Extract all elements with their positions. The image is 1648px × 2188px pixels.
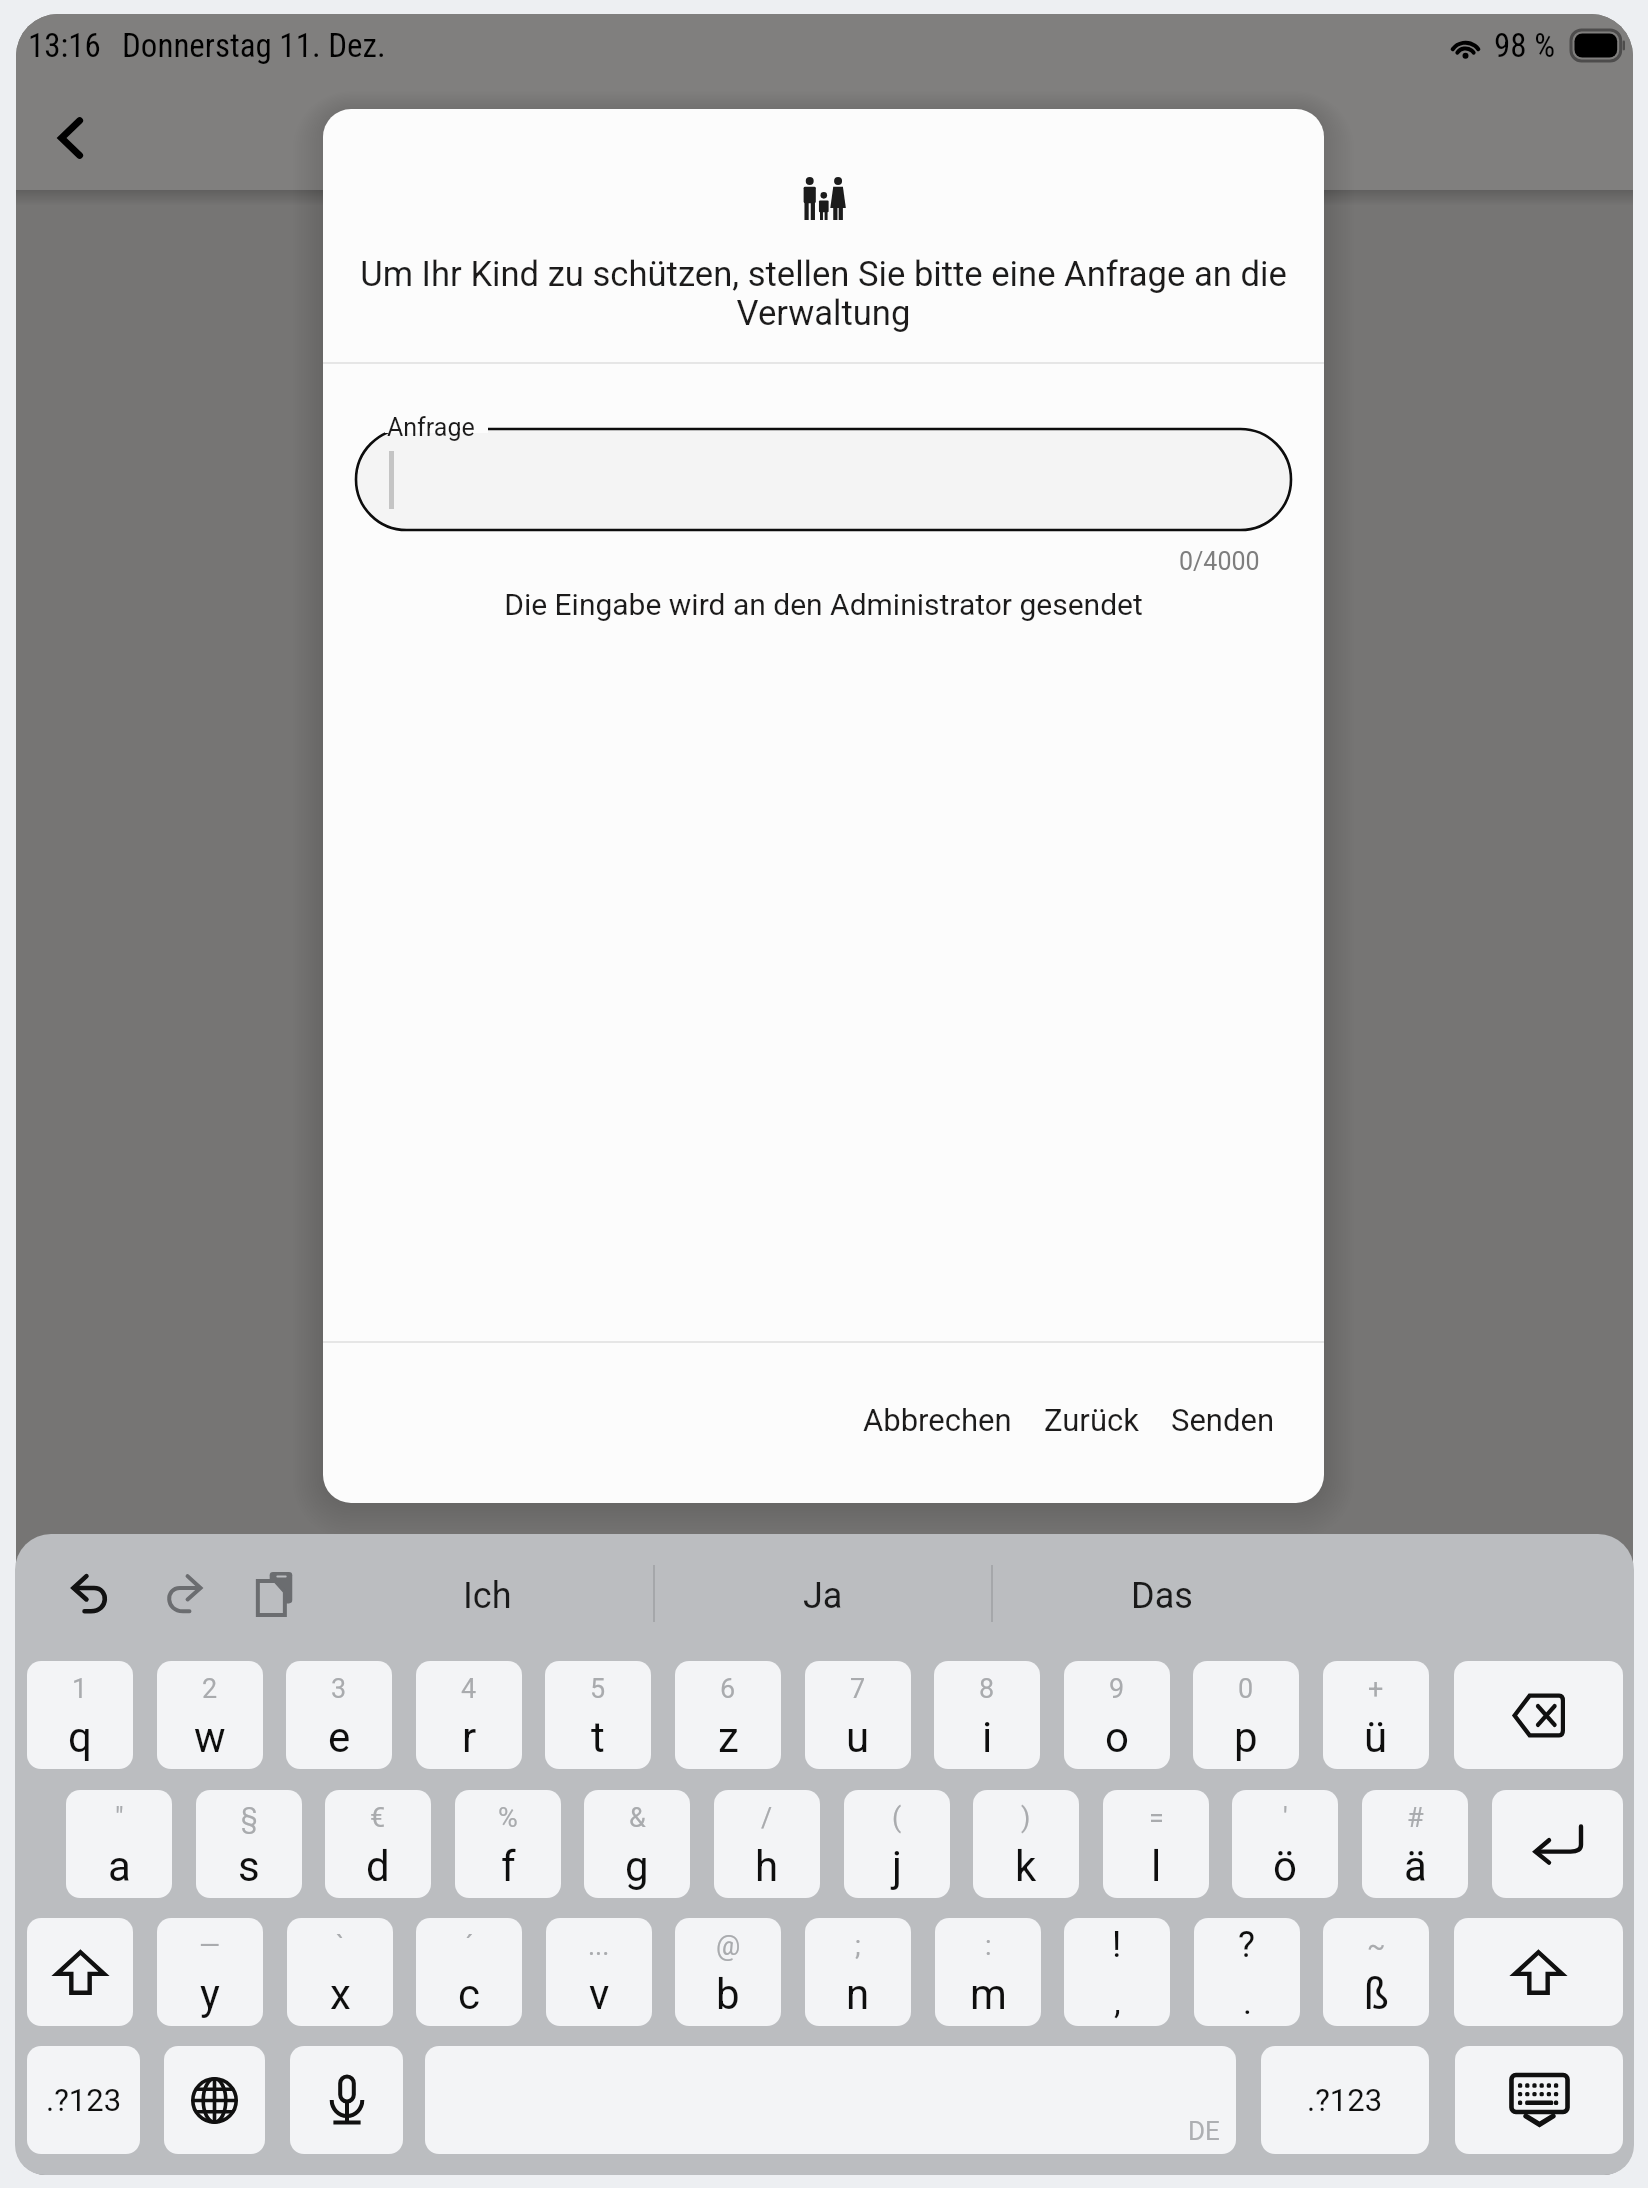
button[interactable]: &	[584, 1790, 690, 1898]
staticText: Die Eingabe wird an den Administrator ge…	[323, 587, 1324, 622]
staticText: e	[328, 1713, 351, 1762]
button[interactable]: 2	[157, 1661, 263, 1769]
staticText: %	[498, 1802, 518, 1834]
staticText: =	[1149, 1802, 1164, 1834]
button[interactable]: Switch language	[164, 2046, 265, 2154]
button[interactable]: Clipboard	[242, 1561, 306, 1625]
staticText: —	[199, 1930, 221, 1962]
button[interactable]: #	[1362, 1790, 1468, 1898]
staticText: h	[755, 1842, 779, 1891]
staticText: Abbrechen	[863, 1402, 1012, 1438]
staticText: b	[716, 1970, 740, 2019]
button[interactable]: 1	[27, 1661, 133, 1769]
staticText: u	[846, 1713, 870, 1762]
button[interactable]: )	[973, 1790, 1079, 1898]
button[interactable]: 4	[416, 1661, 522, 1769]
staticText: @	[716, 1930, 741, 1962]
button[interactable]: —	[157, 1918, 263, 2026]
staticText: i	[982, 1713, 993, 1762]
staticText: j	[892, 1842, 903, 1891]
staticText: +	[1368, 1673, 1384, 1705]
button[interactable]: ´	[416, 1918, 522, 2026]
staticText: #	[1407, 1802, 1424, 1834]
staticText: k	[1015, 1842, 1037, 1891]
button[interactable]: .?123	[27, 2046, 140, 2154]
staticText: &	[629, 1802, 646, 1834]
staticText: §	[241, 1802, 258, 1834]
button[interactable]: @	[675, 1918, 781, 2026]
button[interactable]: 0	[1193, 1661, 1299, 1769]
button[interactable]: €	[325, 1790, 431, 1898]
button[interactable]: Voice input	[290, 2046, 403, 2154]
staticText: Donnerstag 11. Dez.	[122, 26, 386, 65]
staticText: 4	[461, 1673, 477, 1705]
staticText: ?	[1238, 1924, 1256, 1966]
button[interactable]: Enter	[1492, 1790, 1623, 1898]
button[interactable]: /	[714, 1790, 820, 1898]
button[interactable]: Shift	[27, 1918, 133, 2026]
staticText: w	[194, 1713, 226, 1762]
button[interactable]: Space	[425, 2046, 1236, 2154]
button[interactable]: 8	[934, 1661, 1040, 1769]
button[interactable]: Backspace	[1454, 1661, 1623, 1769]
button[interactable]: Shift	[1454, 1918, 1623, 2026]
button[interactable]: '	[1232, 1790, 1338, 1898]
staticText: ,	[1114, 1982, 1121, 2022]
staticText: 98 %	[1494, 26, 1556, 65]
button[interactable]: (	[844, 1790, 950, 1898]
button[interactable]: Back	[26, 94, 114, 182]
button[interactable]: "	[66, 1790, 172, 1898]
staticText: .?123	[46, 2082, 122, 2118]
button[interactable]: `	[287, 1918, 393, 2026]
staticText: s	[238, 1842, 260, 1891]
staticText: Senden	[1171, 1402, 1275, 1438]
button[interactable]: Ja	[655, 1534, 991, 1650]
staticText: .?123	[1307, 2082, 1383, 2118]
staticText: 3	[331, 1673, 347, 1705]
button[interactable]: §	[196, 1790, 302, 1898]
staticText: Ich	[463, 1575, 512, 1617]
button[interactable]: 9	[1064, 1661, 1170, 1769]
button[interactable]: .?123	[1261, 2046, 1429, 2154]
button[interactable]: 5	[545, 1661, 651, 1769]
button[interactable]: ;	[805, 1918, 911, 2026]
button[interactable]: ~	[1323, 1918, 1429, 2026]
staticText: a	[108, 1842, 131, 1891]
staticText: n	[846, 1970, 870, 2019]
staticText: 8	[979, 1673, 995, 1705]
button[interactable]: %	[455, 1790, 561, 1898]
button[interactable]: Zurück	[1028, 1388, 1155, 1452]
button[interactable]: 6	[675, 1661, 781, 1769]
button[interactable]: Hide keyboard	[1455, 2046, 1623, 2154]
button[interactable]: Abbrechen	[847, 1388, 1028, 1452]
button[interactable]: Undo	[59, 1561, 123, 1625]
staticText: d	[366, 1842, 390, 1891]
staticText: 0/4000	[1179, 547, 1260, 576]
button[interactable]: +	[1323, 1661, 1429, 1769]
button[interactable]: !	[1064, 1918, 1170, 2026]
staticText: y	[200, 1970, 220, 2019]
button[interactable]	[356, 429, 1291, 530]
staticText: ;	[855, 1930, 861, 1962]
button[interactable]: Ich	[321, 1534, 653, 1650]
staticText: 1	[72, 1673, 88, 1705]
staticText: Anfrage	[387, 413, 475, 442]
staticText: Das	[1131, 1575, 1193, 1617]
staticText: )	[1021, 1802, 1031, 1834]
staticText: Ja	[803, 1575, 843, 1617]
button[interactable]: 3	[286, 1661, 392, 1769]
button[interactable]: =	[1103, 1790, 1209, 1898]
button[interactable]: 7	[805, 1661, 911, 1769]
staticText: 13:16	[28, 26, 101, 65]
button[interactable]: Das	[993, 1534, 1331, 1650]
button[interactable]: ...	[546, 1918, 652, 2026]
staticText: ß	[1364, 1970, 1389, 2019]
staticText: v	[589, 1970, 610, 2019]
button[interactable]: Senden	[1155, 1388, 1291, 1452]
staticText: €	[370, 1802, 386, 1834]
staticText: t	[591, 1713, 605, 1762]
button[interactable]: :	[935, 1918, 1041, 2026]
staticText: 9	[1109, 1673, 1125, 1705]
button[interactable]: Redo	[151, 1561, 215, 1625]
button[interactable]: ?	[1194, 1918, 1300, 2026]
